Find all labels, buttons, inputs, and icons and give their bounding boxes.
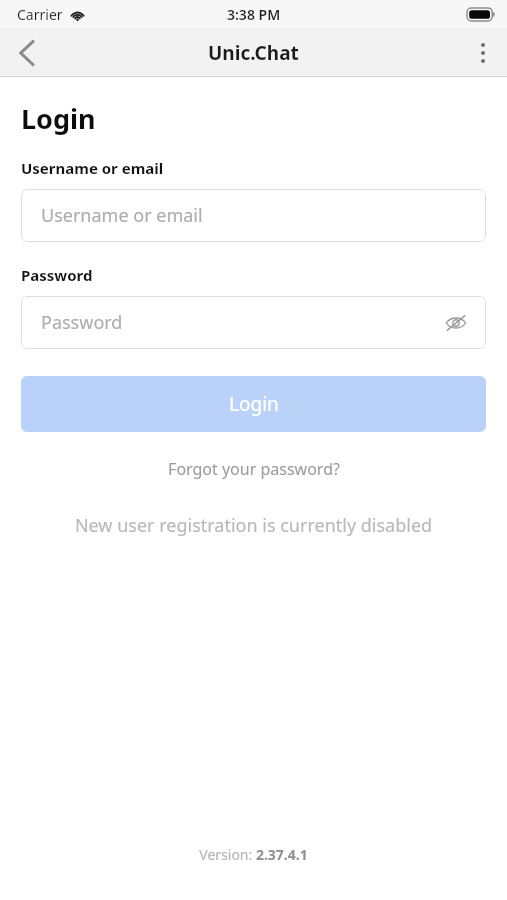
button[interactable]: Show password xyxy=(441,308,471,338)
button[interactable]: Forgot your password? xyxy=(0,454,507,484)
staticText: Version: 2.37.4.1 xyxy=(0,845,507,864)
staticText: New user registration is currently disab… xyxy=(0,513,507,538)
staticText: Password xyxy=(21,265,93,285)
staticText: Login xyxy=(229,391,279,417)
button[interactable]: Username or email xyxy=(21,189,486,242)
button[interactable]: Login xyxy=(21,376,486,432)
staticText: Unic.Chat xyxy=(208,40,299,66)
staticText: Username or email xyxy=(21,158,164,178)
staticText: 3:38 PM xyxy=(227,5,281,24)
staticText: Forgot your password? xyxy=(168,458,340,480)
staticText: Password xyxy=(41,310,123,335)
staticText: Login xyxy=(21,100,96,137)
staticText: Carrier xyxy=(17,5,63,24)
staticText: Username or email xyxy=(41,203,203,228)
button[interactable]: Back xyxy=(0,28,52,77)
button[interactable]: Password xyxy=(21,296,486,349)
button[interactable]: More options xyxy=(459,28,507,77)
